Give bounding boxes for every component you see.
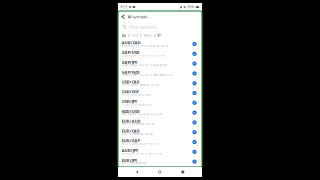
- staticText: Euro vs Great Britain Pound: [122, 142, 159, 145]
- button[interactable]: GBP/JPY: [118, 59, 202, 68]
- staticText: USD/CAD: [122, 79, 140, 85]
- staticText: NZD/USD: [122, 109, 140, 114]
- staticText: AUD/JPY: [122, 148, 138, 153]
- staticText: EUR/JPY: [122, 158, 137, 163]
- button[interactable]: NZD/USD: [118, 108, 202, 117]
- staticText: GBP/NZD: [122, 69, 140, 75]
- button[interactable]: Find symbols: [118, 22, 202, 31]
- button[interactable]: EUR/NZD: [118, 167, 202, 176]
- button[interactable]: USD/CHF: [118, 88, 202, 98]
- staticText: USD/JPY: [122, 99, 137, 104]
- staticText: EUR/GBP: [122, 138, 140, 143]
- staticText: Find symbols: [129, 24, 156, 30]
- button[interactable]: Back: [133, 168, 140, 176]
- staticText: Majors: [144, 34, 152, 37]
- staticText: 86%: [187, 5, 194, 9]
- button[interactable]: Recent apps: [179, 168, 187, 176]
- button[interactable]: GBP/USD: [118, 49, 202, 59]
- staticText: All symbols: [128, 14, 148, 19]
- staticText: GBP/JPY: [122, 60, 137, 65]
- button[interactable]: Home: [156, 168, 164, 176]
- button[interactable]: CAD/JPY: [118, 176, 202, 180]
- staticText: USD/CHF: [122, 89, 139, 94]
- button[interactable]: Forex: [132, 34, 138, 37]
- staticText: Australian Dollar vs Japanese Yen: [122, 152, 163, 155]
- staticText: AUD/CAD: [122, 40, 141, 45]
- staticText: Euro vs Canadian Dollar: [122, 132, 153, 136]
- staticText: 8:52: [121, 5, 128, 9]
- staticText: All: [158, 34, 162, 37]
- staticText: Great Britain Pound vs Japanese Yen: [122, 64, 168, 67]
- staticText: US Dollar vs Japanese Yen: [122, 103, 153, 106]
- button[interactable]: AUD/JPY: [118, 147, 202, 157]
- button[interactable]: All symbols: [128, 11, 148, 22]
- staticText: Great Britain Pound vs New Zealand Dlr: [122, 73, 173, 77]
- staticText: Australian Dollar vs Canadian Dollar: [122, 44, 169, 47]
- staticText: US Dollar vs Swiss Franc: [122, 93, 151, 96]
- button[interactable]: USD/JPY: [118, 98, 202, 108]
- staticText: New Zealand Dollar vs US Dollar: [122, 113, 162, 116]
- button[interactable]: AUD/CAD: [118, 39, 202, 49]
- staticText: EUR/AUD: [122, 118, 141, 124]
- staticText: GBP/USD: [122, 50, 140, 55]
- button[interactable]: EUR/JPY: [118, 157, 202, 166]
- button[interactable]: All: [158, 34, 162, 37]
- staticText: EUR/CAD: [122, 128, 140, 134]
- staticText: Euro vs New Zealand Dollar: [122, 171, 156, 175]
- button[interactable]: GBP/NZD: [118, 69, 202, 78]
- button[interactable]: Majors: [144, 34, 152, 37]
- staticText: US Dollar vs Canadian Dollar: [122, 83, 159, 87]
- button[interactable]: USD/CAD: [118, 78, 202, 88]
- button[interactable]: EUR/AUD: [118, 118, 202, 127]
- staticText: Forex: [132, 34, 138, 37]
- staticText: Euro vs Australian Dollar: [122, 122, 154, 126]
- staticText: Great Britain Pound vs US Dollar: [122, 54, 165, 57]
- staticText: Euro vs Japanese Yen: [122, 162, 147, 165]
- button[interactable]: Back: [118, 11, 128, 22]
- button[interactable]: EUR/CAD: [118, 127, 202, 137]
- staticText: EUR/NZD: [122, 167, 140, 173]
- button[interactable]: EUR/GBP: [118, 137, 202, 147]
